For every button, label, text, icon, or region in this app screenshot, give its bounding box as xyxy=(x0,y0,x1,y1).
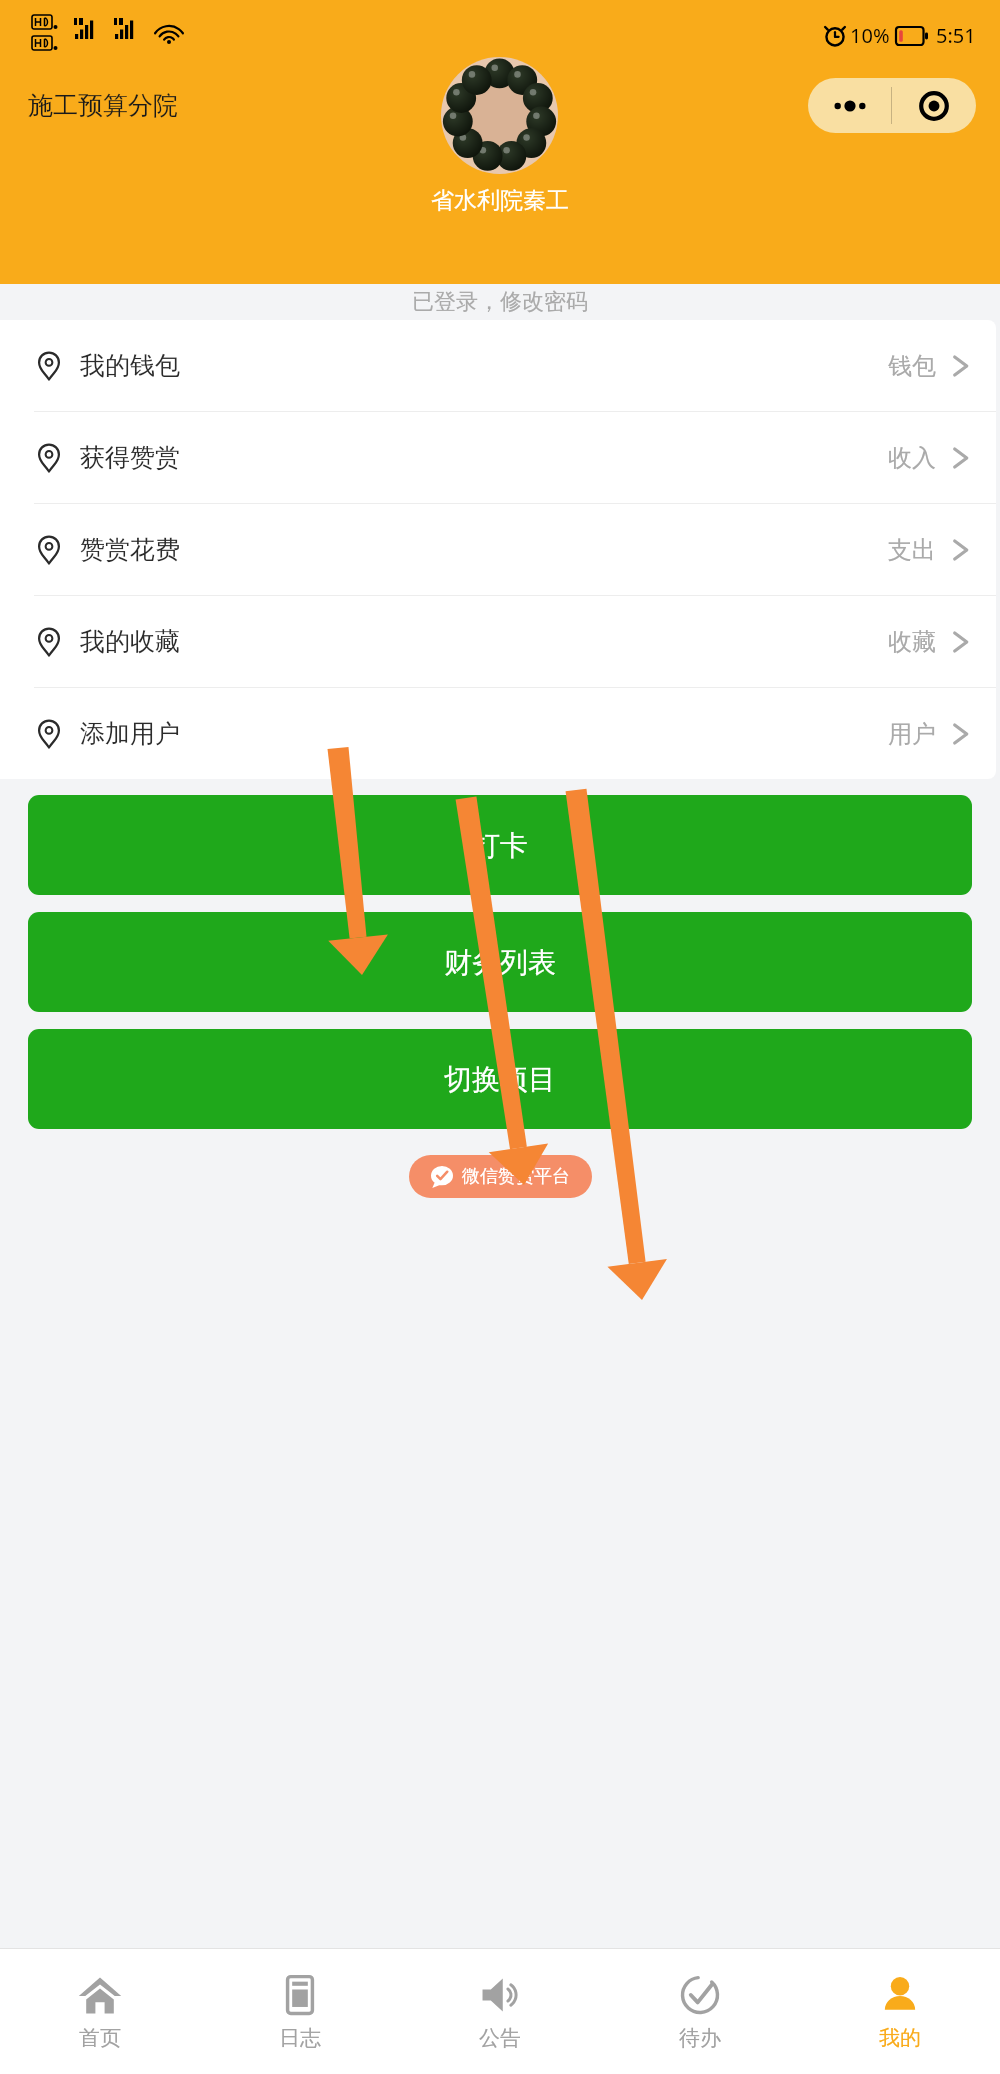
staticText: 日志 xyxy=(279,2025,321,2051)
staticText: 待办 xyxy=(679,2025,721,2051)
staticText: 钱包 xyxy=(888,351,936,381)
staticText: 我的 xyxy=(879,2025,921,2051)
staticText: 首页 xyxy=(79,2025,121,2051)
staticText: 收藏 xyxy=(888,627,936,657)
staticText: 赞赏花费 xyxy=(80,534,180,565)
staticText: 公告 xyxy=(479,2025,521,2051)
button[interactable]: 打卡 xyxy=(28,795,972,895)
staticText: 微信赞赏平台 xyxy=(462,1165,570,1188)
button[interactable]: 首页 xyxy=(0,1949,200,2074)
button[interactable]: 公告 xyxy=(400,1949,600,2074)
button[interactable]: 我的 xyxy=(800,1949,1000,2074)
staticText: 切换项目 xyxy=(444,1062,556,1097)
button[interactable]: 切换项目 xyxy=(28,1029,972,1129)
button[interactable]: 待办 xyxy=(600,1949,800,2074)
button[interactable]: Mini program menu xyxy=(808,78,976,133)
staticText: 已登录，修改密码 xyxy=(412,288,588,316)
staticText: 打卡 xyxy=(472,828,528,863)
staticText: 10% xyxy=(850,22,890,49)
staticText: 我的收藏 xyxy=(80,626,180,657)
button[interactable]: 日志 xyxy=(200,1949,400,2074)
staticText: 省水利院秦工 xyxy=(431,186,569,215)
staticText: 用户 xyxy=(888,719,936,749)
staticText: 施工预算分院 xyxy=(28,90,178,121)
button[interactable]: 财务列表 xyxy=(28,912,972,1012)
button[interactable]: 获得赞赏 xyxy=(0,412,996,503)
staticText: 获得赞赏 xyxy=(80,442,180,473)
staticText: 财务列表 xyxy=(444,945,556,980)
button[interactable]: 赞赏花费 xyxy=(0,504,996,595)
staticText: 我的钱包 xyxy=(80,350,180,381)
button[interactable]: 微信赞赏平台 xyxy=(409,1155,592,1198)
staticText: 5:51 xyxy=(936,22,976,49)
staticText: 支出 xyxy=(888,535,936,565)
button[interactable]: 我的钱包 xyxy=(0,320,996,411)
button[interactable]: 已登录，修改密码 xyxy=(0,284,1000,320)
button[interactable]: 添加用户 xyxy=(0,688,996,779)
staticText: 添加用户 xyxy=(80,718,180,749)
staticText: 收入 xyxy=(888,443,936,473)
button[interactable]: 我的收藏 xyxy=(0,596,996,687)
